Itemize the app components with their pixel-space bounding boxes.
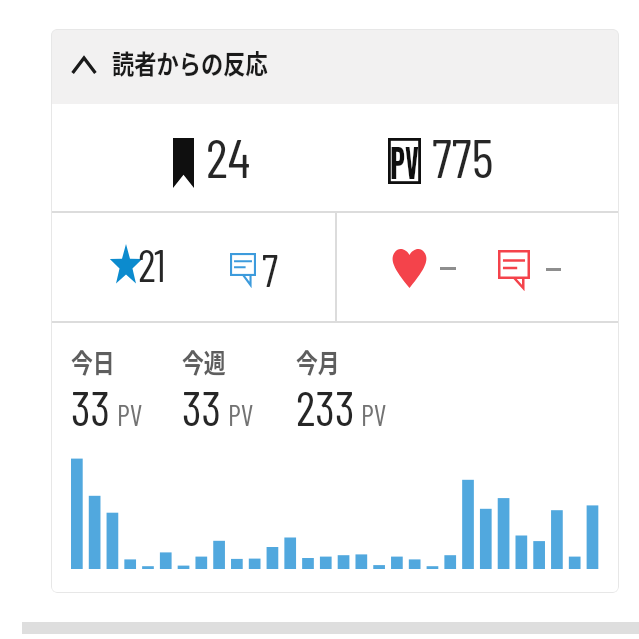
- button[interactable]: Replies: [498, 250, 561, 288]
- staticText: 今月: [296, 343, 340, 381]
- button[interactable]: Bookmarked: [173, 135, 251, 200]
- other: Likes: [392, 248, 427, 288]
- button[interactable]: Likes: [392, 248, 456, 288]
- staticText: PV: [117, 397, 143, 432]
- other: Replies: [498, 250, 530, 288]
- staticText: 読者からの反応: [112, 44, 268, 82]
- staticText: 233: [296, 378, 355, 436]
- other: Comments: [230, 253, 256, 285]
- staticText: PV: [390, 132, 419, 190]
- other: Stars: [109, 244, 143, 284]
- other: Bookmarked: [173, 138, 194, 188]
- staticText: PV: [361, 397, 387, 432]
- other: Collapse section: [71, 55, 97, 75]
- staticText: 33: [182, 378, 222, 436]
- staticText: 今日: [71, 343, 115, 381]
- staticText: 21: [138, 238, 166, 291]
- button[interactable]: Comments: [230, 242, 279, 295]
- button[interactable]: PV: [388, 135, 494, 200]
- staticText: 775: [432, 124, 494, 189]
- staticText: 7: [262, 243, 279, 296]
- staticText: 今週: [182, 343, 226, 381]
- staticText: 24: [206, 124, 251, 189]
- button[interactable]: Collapse section: [51, 29, 619, 104]
- staticText: 33: [71, 378, 111, 436]
- button[interactable]: Stars: [109, 237, 171, 290]
- staticText: PV: [228, 397, 254, 432]
